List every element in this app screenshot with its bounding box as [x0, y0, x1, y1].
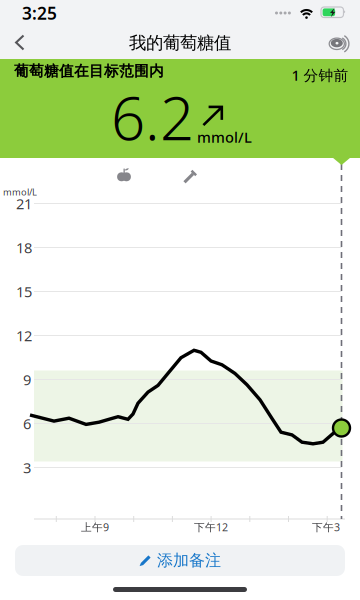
staticText: 12	[16, 326, 32, 345]
staticText: 3:25	[22, 1, 57, 24]
staticText: 下午12	[194, 520, 228, 534]
button[interactable]: 添加备注	[15, 545, 345, 576]
staticText: 9	[23, 370, 31, 389]
button[interactable]: Scan sensor	[318, 26, 360, 59]
staticText: 上午9	[81, 520, 109, 534]
staticText: 我的葡萄糖值	[129, 32, 231, 54]
staticText: 1 分钟前	[291, 65, 348, 85]
staticText: 18	[16, 238, 32, 257]
staticText: 15	[16, 282, 32, 301]
staticText: 21	[16, 194, 32, 213]
staticText: 6.2	[111, 77, 194, 157]
button[interactable]: Back	[0, 26, 40, 59]
staticText: mmol/L	[3, 186, 37, 198]
staticText: 3	[23, 458, 31, 477]
staticText: 添加备注	[157, 551, 221, 570]
staticText: 葡萄糖值在目标范围内	[14, 62, 164, 80]
staticText: mmol/L	[197, 127, 252, 147]
staticText: 下午3	[312, 520, 340, 534]
staticText: 6	[23, 414, 31, 433]
